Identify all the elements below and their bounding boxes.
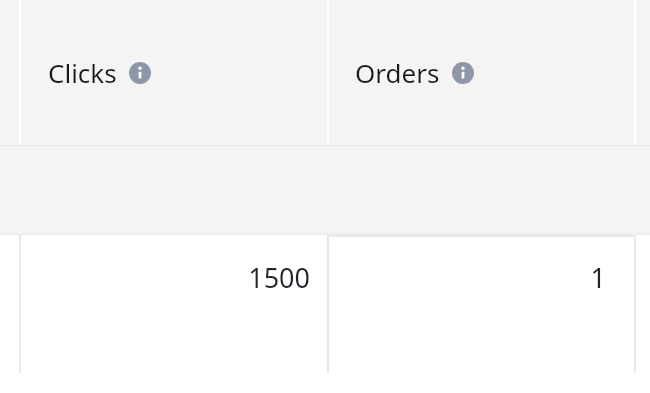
staticText: 1 (590, 259, 606, 296)
button[interactable]: Clicks (20, 0, 327, 145)
button[interactable]: 1500 (20, 235, 327, 373)
button[interactable]: More information (129, 62, 151, 84)
staticText: Orders (355, 55, 440, 90)
button[interactable]: More information (452, 62, 474, 84)
button[interactable]: Orders (328, 0, 634, 145)
staticText: Clicks (48, 55, 117, 90)
button[interactable]: 1 (328, 235, 634, 373)
staticText: 1500 (248, 259, 310, 296)
